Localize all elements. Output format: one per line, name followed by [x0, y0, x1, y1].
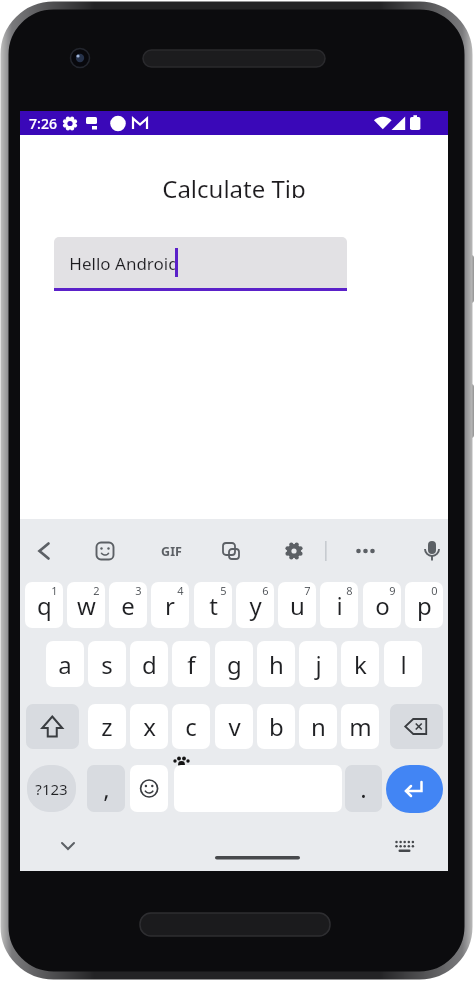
staticText: 4 — [177, 583, 184, 598]
staticText: 6 — [262, 583, 269, 598]
button[interactable]: q — [25, 582, 63, 628]
staticText: r — [165, 589, 175, 622]
button[interactable] — [215, 852, 300, 864]
staticText: , — [103, 772, 110, 805]
staticText: n — [311, 710, 326, 743]
staticText: h — [269, 648, 284, 681]
button[interactable] — [282, 539, 306, 563]
staticText: a — [58, 648, 72, 681]
button[interactable]: c — [172, 704, 210, 749]
staticText: i — [336, 589, 343, 622]
staticText: l — [400, 648, 407, 681]
button[interactable] — [219, 539, 243, 563]
staticText: Hello Android — [69, 252, 179, 275]
staticText: v — [228, 710, 241, 743]
button[interactable]: s — [88, 641, 126, 687]
button[interactable]: u — [278, 582, 316, 628]
staticText: o — [375, 589, 390, 622]
staticText: 5 — [220, 583, 227, 598]
button[interactable]: i — [320, 582, 358, 628]
button[interactable]: x — [130, 704, 168, 749]
button[interactable]: f — [172, 641, 210, 687]
button[interactable]: v — [215, 704, 253, 749]
button[interactable]: y — [236, 582, 274, 628]
button[interactable]: GIF — [158, 541, 184, 561]
staticText: e — [121, 589, 135, 622]
staticText: j — [315, 648, 322, 681]
button[interactable]: o — [363, 582, 401, 628]
button[interactable]: b — [257, 704, 295, 749]
staticText: 0 — [431, 583, 438, 598]
button[interactable]: z — [88, 704, 126, 749]
button[interactable] — [394, 834, 418, 854]
staticText: b — [269, 710, 284, 743]
staticText: 7:26 — [29, 114, 57, 133]
button[interactable] — [93, 539, 117, 563]
button[interactable]: d — [130, 641, 168, 687]
staticText: GIF — [161, 543, 182, 560]
staticText: 2 — [93, 583, 100, 598]
staticText: 1 — [51, 583, 58, 598]
staticText: q — [37, 589, 52, 622]
staticText: p — [417, 589, 432, 622]
button[interactable]: a — [46, 641, 84, 687]
button[interactable]: w — [67, 582, 105, 628]
button[interactable]: , — [87, 765, 125, 812]
button[interactable] — [420, 539, 444, 563]
button[interactable]: j — [299, 641, 337, 687]
staticText: f — [187, 648, 196, 681]
button[interactable]: h — [257, 641, 295, 687]
button[interactable] — [130, 765, 168, 812]
button[interactable]: Hello Android — [54, 237, 347, 290]
staticText: 9 — [389, 583, 396, 598]
button[interactable]: ?123 — [27, 765, 76, 812]
staticText: u — [290, 589, 305, 622]
button[interactable] — [56, 834, 80, 854]
button[interactable] — [386, 765, 443, 813]
button[interactable] — [32, 539, 56, 563]
button[interactable]: l — [384, 641, 422, 687]
button[interactable]: r — [151, 582, 189, 628]
button[interactable] — [353, 539, 377, 563]
staticText: k — [354, 648, 367, 681]
staticText: . — [360, 772, 367, 805]
button[interactable]: g — [215, 641, 253, 687]
staticText: d — [142, 648, 157, 681]
button[interactable]: . — [345, 765, 382, 812]
button[interactable] — [26, 704, 79, 749]
staticText: c — [185, 710, 197, 743]
staticText: 8 — [346, 583, 353, 598]
staticText: m — [349, 710, 372, 743]
staticText: x — [143, 710, 156, 743]
staticText: 3 — [135, 583, 142, 598]
button[interactable]: t — [194, 582, 232, 628]
staticText: w — [77, 589, 96, 622]
button[interactable] — [390, 704, 443, 749]
staticText: g — [227, 648, 242, 681]
button[interactable]: p — [405, 582, 443, 628]
staticText: 7 — [304, 583, 311, 598]
staticText: s — [101, 648, 113, 681]
staticText: Calculate Tip — [162, 172, 306, 198]
staticText: y — [249, 589, 262, 622]
staticText: ?123 — [35, 779, 68, 799]
staticText: t — [209, 589, 218, 622]
staticText: z — [101, 710, 113, 743]
button[interactable]: n — [299, 704, 337, 749]
button[interactable]: k — [341, 641, 379, 687]
button[interactable]: m — [341, 704, 379, 749]
button[interactable]: e — [109, 582, 147, 628]
